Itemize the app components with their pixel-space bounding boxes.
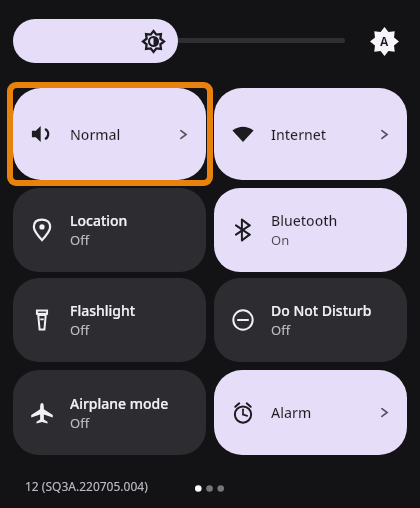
button[interactable]: Internet <box>214 88 407 180</box>
button[interactable]: Flashlight <box>13 278 206 362</box>
button[interactable]: Airplane mode <box>13 370 206 455</box>
button[interactable]: Location <box>13 188 206 272</box>
staticText: 12 (SQ3A.220705.004) <box>25 478 148 494</box>
button[interactable]: Alarm <box>214 370 407 455</box>
button[interactable]: Do Not Disturb <box>214 278 407 362</box>
button[interactable]: Bluetooth <box>214 188 407 272</box>
staticText: Off <box>70 321 90 339</box>
staticText: A <box>380 33 389 49</box>
staticText: Internet <box>271 125 327 144</box>
staticText: Off <box>271 321 291 339</box>
staticText: Airplane mode <box>70 394 169 413</box>
staticText: Flashlight <box>70 301 136 320</box>
staticText: Alarm <box>271 403 312 422</box>
staticText: Normal <box>70 125 121 144</box>
staticText: On <box>271 231 290 249</box>
button[interactable]: Normal <box>13 88 206 180</box>
button[interactable]: Auto brightness <box>368 25 400 57</box>
button[interactable]: Brightness <box>13 19 178 63</box>
staticText: Off <box>70 414 90 432</box>
staticText: Bluetooth <box>271 211 338 230</box>
staticText: Location <box>70 211 128 230</box>
staticText: Off <box>70 231 90 249</box>
staticText: Do Not Disturb <box>271 301 372 320</box>
